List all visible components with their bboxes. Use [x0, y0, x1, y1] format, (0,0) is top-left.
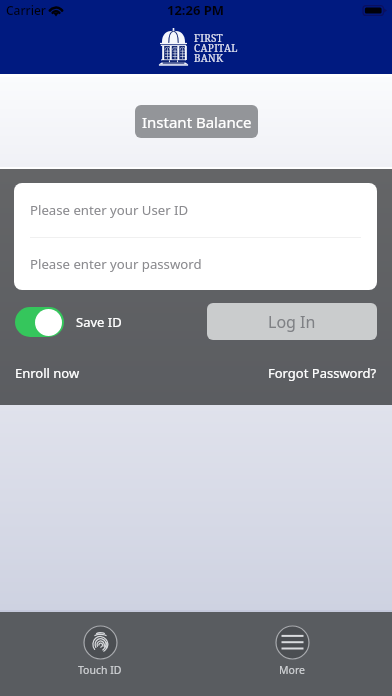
button[interactable]: More: [268, 612, 316, 677]
staticText: More: [279, 663, 305, 677]
button[interactable]: Please enter your password: [14, 238, 377, 290]
button[interactable]: Instant Balance: [135, 105, 258, 138]
staticText: 12:26 PM: [167, 1, 225, 19]
staticText: FIRST CAPITAL BANK: [194, 31, 238, 64]
staticText: Instant Balance: [142, 112, 252, 132]
staticText: Log In: [268, 311, 316, 333]
staticText: Please enter your User ID: [30, 201, 189, 219]
button[interactable]: Please enter your User ID: [14, 183, 377, 237]
staticText: Forgot Password?: [268, 364, 377, 382]
staticText: Please enter your password: [30, 255, 202, 273]
button[interactable]: Log In: [207, 303, 377, 340]
button[interactable]: Save ID toggle: [15, 307, 64, 337]
staticText: Save ID: [76, 313, 122, 331]
staticText: Touch ID: [78, 663, 122, 677]
staticText: Carrier: [6, 2, 46, 18]
staticText: Enroll now: [15, 364, 80, 382]
button[interactable]: Forgot Password?: [268, 364, 377, 382]
button[interactable]: Touch ID: [76, 612, 124, 677]
button[interactable]: Enroll now: [15, 364, 80, 382]
